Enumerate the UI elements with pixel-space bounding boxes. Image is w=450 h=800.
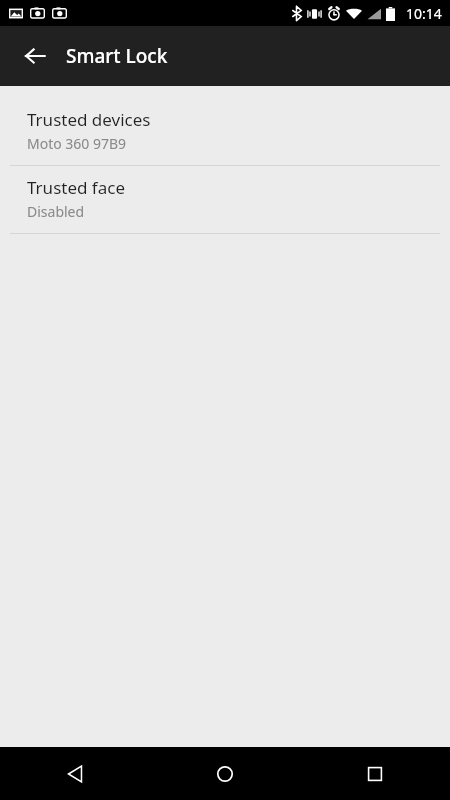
button[interactable]: Home	[150, 747, 300, 800]
staticText: Moto 360 97B9	[27, 134, 127, 153]
button[interactable]: Trusted devices	[0, 98, 450, 165]
staticText: 10:14	[406, 4, 442, 23]
staticText: Disabled	[27, 202, 85, 221]
button[interactable]: Trusted face	[0, 166, 450, 233]
button[interactable]: Navigate up	[12, 33, 58, 79]
staticText: Trusted devices	[27, 108, 151, 131]
staticText: Smart Lock	[66, 43, 168, 69]
button[interactable]: Recent apps	[300, 747, 450, 800]
staticText: Trusted face	[27, 176, 126, 199]
button[interactable]: Back	[0, 747, 150, 800]
